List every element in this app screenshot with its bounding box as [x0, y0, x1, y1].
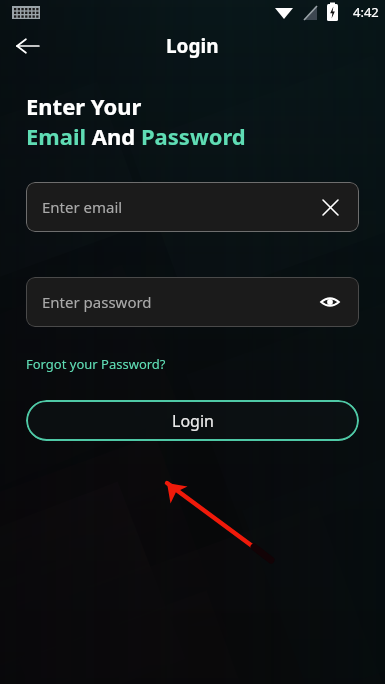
- staticText: Enter password: [42, 292, 317, 312]
- button[interactable]: Clear email: [317, 194, 343, 220]
- button[interactable]: Forgot your Password?: [26, 355, 166, 373]
- button[interactable]: Enter email: [26, 182, 359, 232]
- staticText: Login: [166, 33, 219, 59]
- button[interactable]: Show password: [317, 289, 343, 315]
- staticText: Enter Your Email And Password: [26, 91, 246, 152]
- button[interactable]: Login: [26, 400, 359, 441]
- staticText: Login: [172, 410, 214, 432]
- staticText: Forgot your Password?: [26, 355, 166, 373]
- staticText: 4:42: [353, 3, 379, 21]
- staticText: Enter email: [42, 197, 317, 217]
- button[interactable]: Back: [8, 26, 48, 66]
- button[interactable]: Enter password: [26, 277, 359, 327]
